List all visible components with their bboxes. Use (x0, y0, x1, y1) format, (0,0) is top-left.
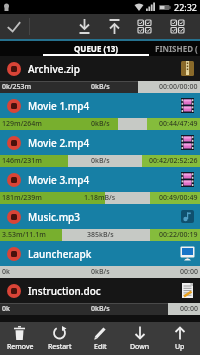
staticText: Archive.zip (28, 62, 180, 76)
button[interactable]: Instruction.doc (0, 278, 200, 315)
button[interactable] (102, 16, 126, 37)
button[interactable]: Down (120, 322, 160, 355)
staticText: Movie 2.mp4 (28, 136, 180, 150)
staticText: 00:00 (180, 304, 198, 314)
staticText: Movie 1.mp4 (28, 99, 180, 113)
staticText: 146m/231m (2, 156, 42, 166)
staticText: QUEUE (13) (74, 43, 119, 54)
staticText: 22:32 (174, 1, 198, 13)
staticText: FINISHED ( (155, 43, 198, 54)
button[interactable] (72, 16, 96, 37)
button[interactable]: Edit (80, 322, 120, 355)
staticText: Instruction.doc (28, 284, 180, 298)
staticText: 0kB/s (91, 119, 110, 129)
button[interactable]: Restart (40, 322, 80, 355)
staticText: Music.mp3 (28, 210, 180, 224)
staticText: Movie 3.mp4 (28, 173, 180, 187)
staticText: 0k (2, 304, 10, 314)
staticText: 385kB/s (87, 230, 114, 240)
button[interactable]: Remove (0, 322, 40, 355)
staticText: 0k/253m (2, 82, 32, 92)
button[interactable]: Up (160, 322, 200, 355)
button[interactable]: FINISHED ( (149, 41, 200, 56)
staticText: 00:44/47:49 (159, 119, 198, 129)
staticText: Restart (48, 342, 72, 352)
staticText: Up (175, 342, 185, 352)
button[interactable]: Music.mp3 (0, 204, 200, 241)
button[interactable] (132, 16, 156, 37)
button[interactable]: QUEUE (13) (43, 41, 149, 56)
staticText: 0kB/s (91, 82, 110, 92)
button[interactable]: Movie 3.mp4 (0, 167, 200, 204)
staticText: Down (130, 342, 150, 352)
button[interactable]: Movie 1.mp4 (0, 93, 200, 130)
staticText: Remove (7, 342, 34, 352)
staticText: Edit (94, 342, 107, 352)
staticText: 0kB/s (91, 304, 110, 314)
staticText: 00:00/00:00 (159, 82, 198, 92)
staticText: 3.53m/11.1m (2, 230, 46, 240)
staticText: 00:42/02:52:26 (149, 156, 198, 166)
staticText: 00:22/00:19 (159, 230, 198, 240)
staticText: 129m/264m (2, 119, 42, 129)
button[interactable] (165, 16, 189, 37)
staticText: 0kB/s (91, 156, 110, 166)
staticText: 0kB/s (91, 267, 110, 277)
staticText: 0k (2, 267, 10, 277)
button[interactable]: Movie 2.mp4 (0, 130, 200, 167)
button[interactable] (2, 16, 26, 37)
button[interactable]: Launcher.apk (0, 241, 200, 278)
button[interactable]: Archive.zip (0, 56, 200, 93)
staticText: 181m/239m (2, 193, 42, 203)
staticText: 1.18mB/s (84, 193, 116, 203)
staticText: 00:00 (180, 267, 198, 277)
staticText: 00:49/00:49 (159, 193, 198, 203)
staticText: Launcher.apk (28, 247, 180, 261)
